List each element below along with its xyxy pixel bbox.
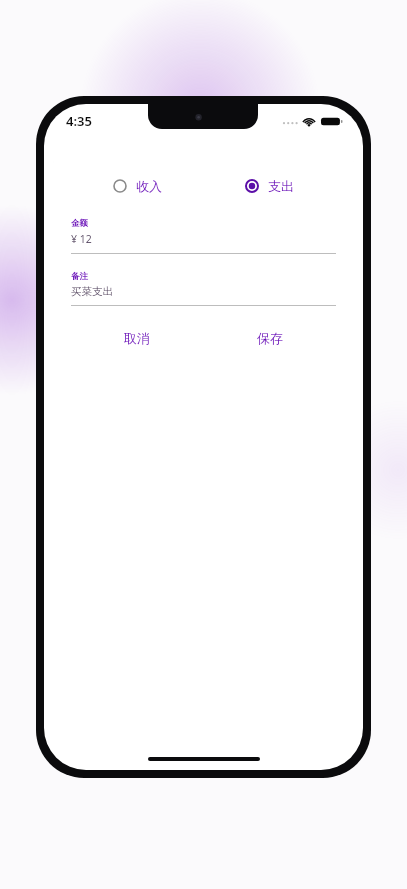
- button[interactable]: 保存: [241, 324, 299, 352]
- button[interactable]: 收入: [109, 174, 166, 198]
- staticText: 取消: [124, 330, 150, 346]
- staticText: 收入: [136, 178, 162, 194]
- staticText: ¥ 12: [71, 232, 92, 246]
- button[interactable]: 支出: [241, 174, 298, 198]
- staticText: 备注: [71, 271, 88, 282]
- staticText: 4:35: [66, 112, 92, 130]
- staticText: 保存: [257, 330, 283, 346]
- button[interactable]: 备注: [71, 271, 336, 306]
- staticText: 金额: [71, 218, 88, 229]
- staticText: 支出: [268, 178, 294, 194]
- button[interactable]: 金额: [71, 218, 336, 254]
- staticText: 买菜支出: [71, 285, 113, 298]
- button[interactable]: 取消: [108, 324, 166, 352]
